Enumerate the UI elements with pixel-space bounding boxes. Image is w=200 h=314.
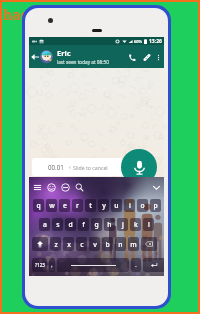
staticText: i [129, 201, 131, 210]
button[interactable]: l [143, 218, 154, 231]
staticText: l [148, 220, 150, 229]
staticText: c [80, 240, 84, 249]
staticText: 60% [134, 39, 143, 44]
staticText: hack-cheat.org [3, 5, 109, 24]
button[interactable]: h [104, 218, 115, 231]
button[interactable]: m [128, 237, 139, 251]
staticText: p [153, 201, 158, 210]
button[interactable]: Backspace [141, 237, 157, 251]
button[interactable]: i [124, 199, 135, 212]
button[interactable]: e [59, 199, 70, 212]
staticText: t [89, 201, 92, 210]
button[interactable]: Attach [139, 46, 153, 68]
button[interactable]: g [91, 218, 102, 231]
staticText: ‹ [69, 163, 71, 171]
button[interactable]: Record voice message [121, 149, 157, 185]
button[interactable]: x [63, 237, 74, 251]
staticText: last seen today at 08:50 [57, 59, 109, 65]
button[interactable]: v [89, 237, 100, 251]
button[interactable]: b [102, 237, 113, 251]
button[interactable]: a [39, 218, 50, 231]
staticText: ?123 [35, 262, 45, 268]
button[interactable]: o [137, 199, 148, 212]
staticText: . [135, 262, 137, 269]
button[interactable]: f [78, 218, 89, 231]
staticText: z [54, 240, 58, 249]
staticText: w [49, 201, 55, 210]
button[interactable]: s [52, 218, 63, 231]
button[interactable]: 00.01 [32, 158, 123, 176]
staticText: x [67, 240, 71, 249]
button[interactable]: Shift [32, 237, 48, 251]
staticText: 00.01 [48, 163, 64, 171]
staticText: v [93, 240, 97, 249]
staticText: g [94, 220, 99, 229]
button[interactable]: Enter [143, 258, 164, 272]
staticText: b [105, 240, 110, 249]
button[interactable]: y [98, 199, 109, 212]
button[interactable]: u [111, 199, 122, 212]
button[interactable]: w [46, 199, 57, 212]
button[interactable]: . [131, 258, 141, 272]
staticText: m [130, 240, 137, 249]
staticText: f [82, 220, 85, 229]
staticText: Slide to cancel [73, 164, 108, 171]
button[interactable]: d [65, 218, 76, 231]
button[interactable]: Theme [58, 178, 72, 197]
button[interactable]: q [33, 199, 44, 212]
staticText: j [122, 220, 124, 229]
staticText: q [36, 201, 41, 210]
button[interactable]: Call [125, 46, 139, 68]
button[interactable]: k [130, 218, 141, 231]
button[interactable]: Search [72, 178, 86, 197]
staticText: 13:26 [149, 38, 162, 45]
staticText: a [43, 220, 47, 229]
staticText: h [107, 220, 112, 229]
button[interactable]: r [72, 199, 83, 212]
staticText: s [56, 220, 60, 229]
button[interactable]: c [76, 237, 87, 251]
staticText: y [102, 201, 106, 210]
button[interactable]: p [150, 199, 161, 212]
button[interactable]: z [50, 237, 61, 251]
button[interactable]: Emoji [44, 178, 58, 197]
staticText: k [134, 220, 138, 229]
staticText: u [114, 201, 119, 210]
button[interactable]: t [85, 199, 96, 212]
staticText: e [63, 201, 67, 210]
button[interactable]: More options [153, 46, 164, 68]
button[interactable]: n [115, 237, 126, 251]
button[interactable]: Hide keyboard [149, 178, 163, 197]
button[interactable]: j [117, 218, 128, 231]
staticText: r [76, 201, 79, 210]
staticText: n [118, 240, 123, 249]
button[interactable]: Space [57, 258, 129, 272]
staticText: , [51, 262, 53, 269]
button[interactable]: , [49, 258, 55, 272]
button[interactable]: ?123 [32, 258, 47, 272]
staticText: d [68, 220, 73, 229]
staticText: Eric [57, 48, 71, 58]
button[interactable]: Back [29, 46, 40, 68]
staticText: o [140, 201, 145, 210]
button[interactable]: Menu [30, 178, 44, 197]
